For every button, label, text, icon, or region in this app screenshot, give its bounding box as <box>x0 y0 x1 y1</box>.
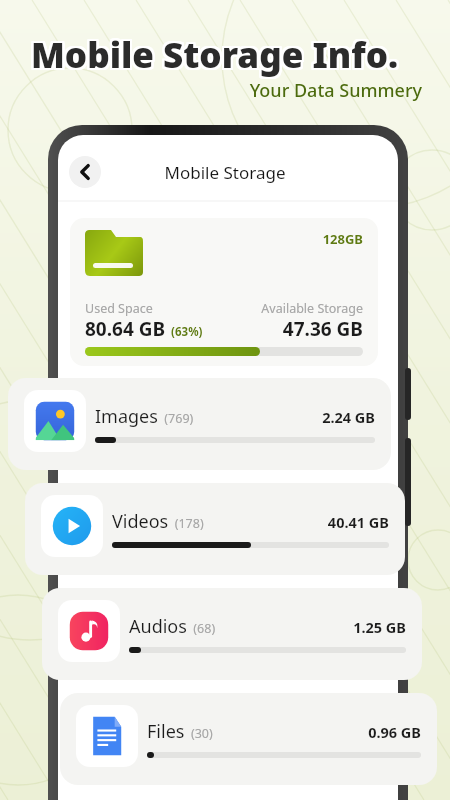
staticText: Mobile Storage Info. <box>32 31 400 79</box>
staticText: Mobile Storage Info. <box>30 30 398 78</box>
staticText: Mobile Storage Info. <box>31 31 399 79</box>
staticText: Your Data Summery <box>160 78 422 103</box>
staticText: Mobile Storage Info. <box>32 33 400 81</box>
staticText: Images (769) <box>95 404 194 429</box>
staticText: 0.96 GB <box>331 722 421 742</box>
staticText: 47.36 GB <box>263 316 363 342</box>
staticText: Mobile Storage Info. <box>29 32 397 80</box>
button[interactable] <box>8 378 391 470</box>
button[interactable] <box>42 588 422 680</box>
staticText: Mobile Storage Info. <box>33 31 401 79</box>
staticText: Mobile Storage Info. <box>32 32 400 80</box>
staticText: Mobile Storage Info. <box>31 29 399 77</box>
staticText: Videos (178) <box>112 509 204 534</box>
staticText: Mobile Storage Info. <box>30 31 398 79</box>
staticText: Mobile Storage Info. <box>31 33 399 81</box>
staticText: Mobile Storage Info. <box>33 30 401 78</box>
staticText: Mobile Storage Info. <box>30 33 398 81</box>
staticText: Mobile Storage Info. <box>33 32 401 80</box>
button[interactable] <box>25 483 405 575</box>
button[interactable] <box>70 218 378 366</box>
staticText: Mobile Storage Info. <box>33 33 401 81</box>
staticText: Mobile Storage Info. <box>31 32 399 80</box>
staticText: Mobile Storage Info. <box>32 30 400 78</box>
staticText: Files (30) <box>147 719 213 744</box>
staticText: 2.24 GB <box>285 407 375 427</box>
staticText: Mobile Storage Info. <box>29 29 397 77</box>
staticText: Mobile Storage Info. <box>31 30 399 78</box>
staticText: Mobile Storage Info. <box>30 32 398 80</box>
staticText: Mobile Storage Info. <box>29 33 397 81</box>
staticText: Mobile Storage Info. <box>33 29 401 77</box>
staticText: Mobile Storage Info. <box>29 31 397 79</box>
staticText: Available Storage <box>250 300 363 317</box>
staticText: 128GB <box>268 230 363 248</box>
staticText: 80.64 GB (63%) <box>85 316 203 342</box>
staticText: Used Space <box>85 300 153 317</box>
staticText: 40.41 GB <box>299 512 389 532</box>
button[interactable]: Back <box>69 156 101 188</box>
staticText: Mobile Storage Info. <box>32 29 400 77</box>
staticText: 1.25 GB <box>316 617 406 637</box>
staticText: Audios (68) <box>129 614 216 639</box>
staticText: Mobile Storage Info. <box>29 30 397 78</box>
staticText: Mobile Storage <box>110 161 340 184</box>
button[interactable] <box>60 693 437 785</box>
staticText: Mobile Storage Info. <box>30 29 398 77</box>
